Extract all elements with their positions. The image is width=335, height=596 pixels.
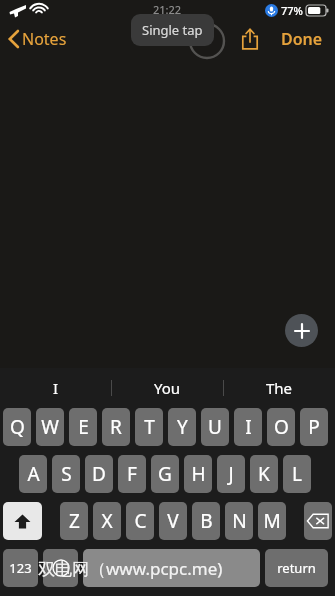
button[interactable]: E (69, 408, 97, 446)
staticText: B (200, 508, 213, 534)
button[interactable]: You (112, 368, 223, 408)
button[interactable]: J (217, 455, 245, 493)
staticText: D (92, 461, 106, 487)
button[interactable]: 123 (3, 549, 38, 587)
button[interactable]: Notes (7, 28, 67, 50)
button[interactable]: S (52, 455, 80, 493)
staticText: N (232, 508, 247, 534)
staticText: E (78, 414, 89, 440)
button[interactable]: K (250, 455, 278, 493)
button[interactable]: Share (235, 24, 265, 54)
staticText: P (308, 414, 320, 440)
button[interactable]: V (159, 502, 187, 540)
staticText: K (258, 461, 270, 487)
button[interactable]: Backspace (304, 502, 332, 540)
staticText: Q (10, 414, 25, 440)
button[interactable]: L (283, 455, 311, 493)
staticText: A (27, 461, 40, 487)
button[interactable] (83, 549, 260, 587)
staticText: F (127, 461, 137, 487)
button[interactable]: R (102, 408, 130, 446)
staticText: The (266, 378, 293, 398)
staticText: X (101, 508, 113, 534)
staticText: return (277, 559, 316, 577)
staticText: Done (281, 28, 323, 50)
staticText: 21:22 (153, 2, 182, 17)
staticText: Notes (22, 28, 67, 50)
staticText: H (191, 461, 206, 487)
staticText: W (41, 414, 59, 440)
button[interactable]: The (224, 368, 335, 408)
staticText: 123 (9, 559, 32, 577)
button[interactable]: Y (168, 408, 196, 446)
button[interactable]: A (19, 455, 47, 493)
staticText: Single tap (142, 21, 203, 39)
staticText: I (245, 414, 252, 440)
button[interactable]: H (184, 455, 212, 493)
button[interactable]: G (151, 455, 179, 493)
staticText: C (134, 508, 147, 534)
button[interactable]: X (93, 502, 121, 540)
staticText: V (167, 508, 179, 534)
staticText: 双电网（www.pcpc.me) (38, 557, 223, 580)
staticText: S (61, 461, 72, 487)
button[interactable]: Emoji (43, 549, 78, 587)
button[interactable]: return (265, 549, 328, 587)
button[interactable]: T (135, 408, 163, 446)
button[interactable]: Shift (3, 502, 42, 540)
button[interactable]: O (267, 408, 295, 446)
staticText: U (208, 414, 222, 440)
button[interactable]: Q (3, 408, 31, 446)
button[interactable]: U (201, 408, 229, 446)
button[interactable]: Done (279, 24, 325, 54)
staticText: I (53, 378, 59, 398)
button[interactable]: C (126, 502, 154, 540)
staticText: M (263, 508, 281, 534)
button[interactable]: D (85, 455, 113, 493)
button[interactable]: P (300, 408, 328, 446)
staticText: Y (177, 414, 188, 440)
button[interactable]: Z (60, 502, 88, 540)
staticText: R (110, 414, 122, 440)
staticText: J (228, 461, 234, 487)
button[interactable]: I (0, 368, 111, 408)
button[interactable]: I (234, 408, 262, 446)
button[interactable]: B (192, 502, 220, 540)
staticText: L (292, 461, 302, 487)
staticText: G (158, 461, 172, 487)
staticText: You (154, 378, 181, 398)
staticText: Z (69, 508, 80, 534)
staticText: T (144, 414, 155, 440)
button[interactable]: F (118, 455, 146, 493)
staticText: O (274, 414, 289, 440)
button[interactable]: Add (285, 314, 318, 347)
button[interactable]: N (225, 502, 253, 540)
button[interactable]: W (36, 408, 64, 446)
button[interactable]: M (258, 502, 286, 540)
staticText: 77% (281, 3, 303, 18)
